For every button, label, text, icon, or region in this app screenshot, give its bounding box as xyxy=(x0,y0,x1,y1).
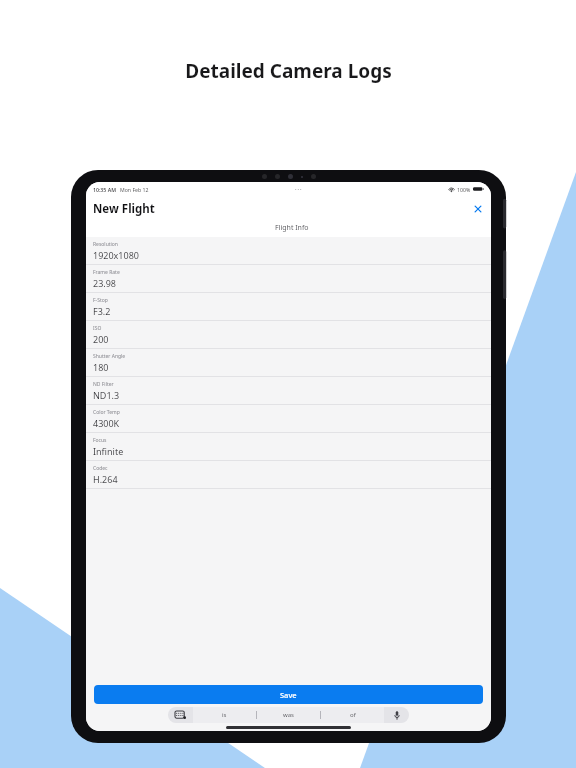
button[interactable]: of xyxy=(321,707,384,723)
button[interactable]: Close xyxy=(471,202,485,216)
staticText: 4300K xyxy=(93,417,120,429)
staticText: 23.98 xyxy=(93,277,117,289)
staticText: was xyxy=(283,711,294,719)
staticText: Mon Feb 12 xyxy=(120,186,149,193)
button[interactable]: Codec xyxy=(86,461,491,489)
staticText: Infinite xyxy=(93,445,124,457)
button[interactable]: Dictate xyxy=(384,707,409,723)
staticText: 100% xyxy=(457,186,471,193)
staticText: Color Temp xyxy=(93,409,120,416)
staticText: Shutter Angle xyxy=(93,353,126,360)
staticText: Focus xyxy=(93,437,107,444)
button[interactable]: Color Temp xyxy=(86,405,491,433)
staticText: Flight Info xyxy=(275,223,309,233)
staticText: of xyxy=(350,711,356,719)
staticText: F3.2 xyxy=(93,305,111,317)
button[interactable]: Keyboard xyxy=(168,707,193,723)
staticText: 1920x1080 xyxy=(93,249,139,261)
button[interactable]: Save xyxy=(94,685,483,704)
button[interactable]: ISO xyxy=(86,321,491,349)
button[interactable]: was xyxy=(257,707,320,723)
staticText: Detailed Camera Logs xyxy=(185,58,392,84)
staticText: ND1.3 xyxy=(93,389,120,401)
button[interactable]: is xyxy=(193,707,256,723)
staticText: • • • xyxy=(295,187,302,192)
staticText: F-Stop xyxy=(93,297,108,304)
staticText: Frame Rate xyxy=(93,269,120,276)
staticText: Codec xyxy=(93,465,108,472)
button[interactable]: Resolution xyxy=(86,237,491,265)
button[interactable]: Frame Rate xyxy=(86,265,491,293)
button[interactable]: ND Filter xyxy=(86,377,491,405)
staticText: Resolution xyxy=(93,241,118,248)
staticText: ND Filter xyxy=(93,381,114,388)
staticText: 10:35 AM xyxy=(93,186,116,193)
button[interactable]: F-Stop xyxy=(86,293,491,321)
staticText: is xyxy=(222,711,227,719)
button[interactable]: Focus xyxy=(86,433,491,461)
staticText: ISO xyxy=(93,325,102,332)
staticText: 200 xyxy=(93,333,109,345)
staticText: Save xyxy=(280,690,297,700)
staticText: 180 xyxy=(93,361,109,373)
button[interactable]: Shutter Angle xyxy=(86,349,491,377)
staticText: H.264 xyxy=(93,473,118,485)
button[interactable]: Flight Info xyxy=(92,221,491,237)
staticText: New Flight xyxy=(93,201,155,217)
